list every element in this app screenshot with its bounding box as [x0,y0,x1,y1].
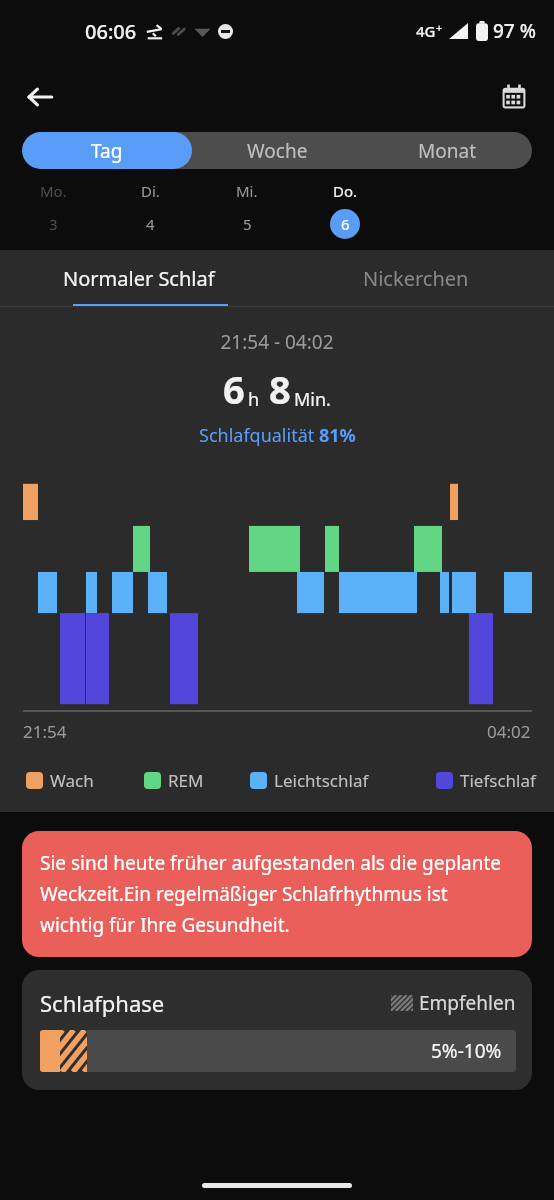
staticText: Normaler Schlaf [63,265,215,292]
staticText: + [436,20,443,35]
staticText: Monat [418,138,476,164]
staticText: 06:06 [85,18,137,45]
staticText: 8 [269,363,291,415]
staticText: Tag [91,138,123,164]
staticText: Mo. [40,181,67,201]
button[interactable]: Mi. [198,181,296,239]
staticText: Min. [294,387,331,412]
staticText: Sie sind heute früher aufgestanden als d… [40,850,514,938]
staticText: 4 [146,214,155,234]
staticText: 3 [49,214,58,234]
button[interactable]: Back [16,73,64,121]
staticText: Mi. [236,181,258,201]
staticText: Leichtschlaf [274,769,369,792]
button[interactable]: Monat [362,132,532,169]
button[interactable]: Schlafphase [22,970,532,1090]
staticText: 6 [223,363,245,415]
staticText: Schlafqualität [199,423,319,448]
staticText: 04:02 [487,720,531,743]
staticText: Di. [141,181,160,201]
staticText: 4G [416,21,436,41]
staticText: 5%-10% [431,1038,502,1064]
staticText: 97 % [493,18,536,44]
staticText: 21:54 - 04:02 [0,329,554,355]
button[interactable]: Calendar [492,75,536,119]
staticText: Schlafphase [40,988,165,1018]
button[interactable]: Normaler Schlaf [0,250,277,307]
staticText: Nickerchen [363,265,469,292]
staticText: Empfehlen [419,990,516,1016]
staticText: 6 [341,214,350,234]
button[interactable]: Nickerchen [277,250,554,307]
button[interactable]: Do. [296,181,394,239]
staticText: h [248,387,260,412]
staticText: Tiefschlaf [460,769,536,792]
button[interactable]: Tag [22,132,192,169]
button[interactable]: Woche [192,132,362,169]
staticText: REM [168,769,204,792]
staticText: 81% [319,423,356,448]
button[interactable]: Sie sind heute früher aufgestanden als d… [22,831,532,957]
staticText: Woche [247,138,308,164]
button[interactable]: Mo. [4,181,101,239]
staticText: 21:54 [23,720,67,743]
staticText: Wach [50,769,94,792]
button[interactable]: Di. [101,181,198,239]
staticText: 5 [243,214,252,234]
staticText: Do. [333,181,358,201]
